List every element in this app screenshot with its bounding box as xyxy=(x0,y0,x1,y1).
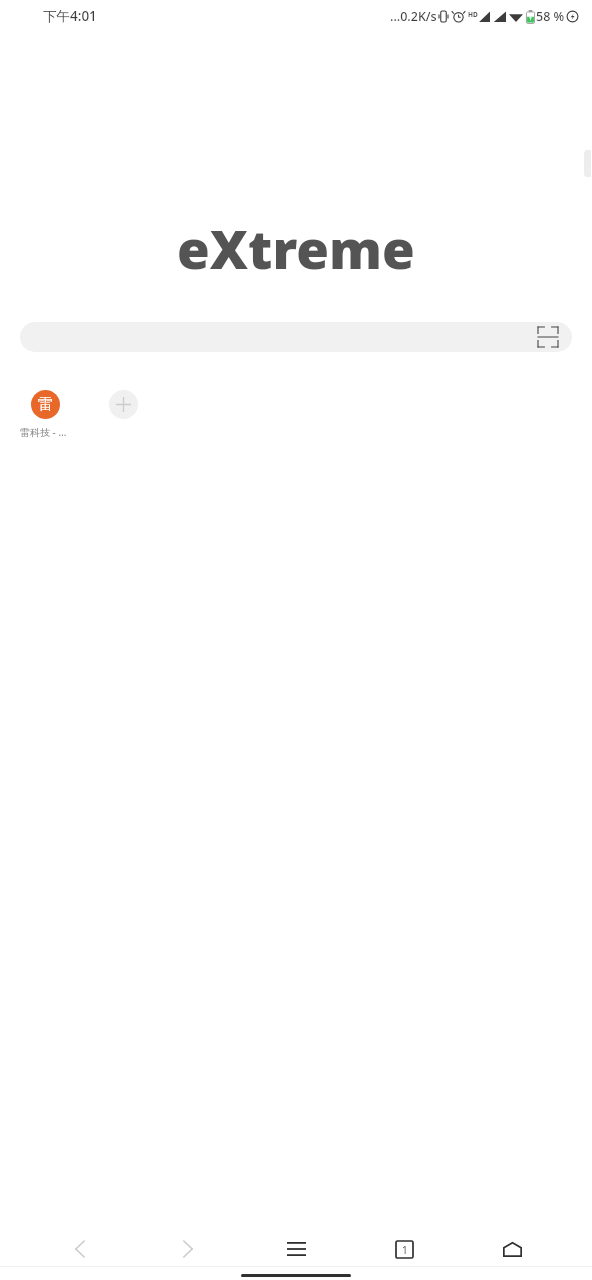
staticText: ...0.2K/s xyxy=(390,8,437,25)
button[interactable]: Home xyxy=(484,1232,540,1266)
button[interactable]: 雷 xyxy=(20,390,70,439)
staticText: eXtreme xyxy=(177,212,415,284)
button[interactable]: Forward xyxy=(160,1232,216,1266)
button[interactable]: Scan QR code xyxy=(537,326,559,348)
staticText: 58 % xyxy=(536,8,565,25)
staticText: 1 xyxy=(402,1243,408,1257)
button[interactable]: Back xyxy=(52,1232,108,1266)
staticText: 下午4:01 xyxy=(43,7,97,25)
button[interactable]: Menu xyxy=(268,1232,324,1266)
staticText: 雷 xyxy=(38,395,53,414)
staticText: HD xyxy=(468,10,478,19)
staticText: 雷科技 - 关... xyxy=(20,425,70,439)
button[interactable]: Scan QR code xyxy=(20,322,572,352)
button[interactable]: Tabs: 1 xyxy=(376,1232,432,1266)
button[interactable]: Add shortcut xyxy=(98,390,148,419)
